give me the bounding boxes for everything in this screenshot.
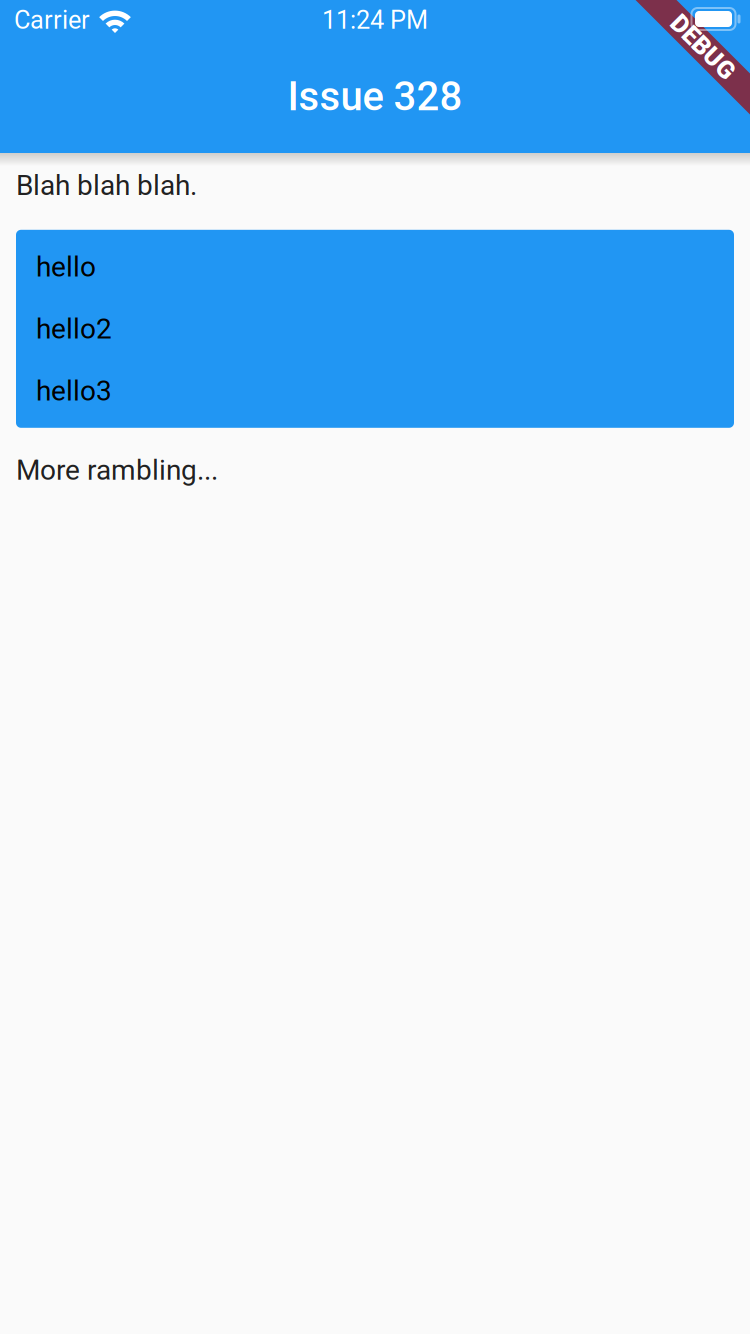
button[interactable]: hello [16, 236, 734, 298]
staticText: Issue 328 [287, 73, 462, 120]
button[interactable]: hello3 [16, 360, 734, 422]
staticText: hello2 [36, 312, 112, 345]
staticText: hello3 [36, 374, 112, 407]
staticText: Carrier [14, 5, 90, 35]
staticText: DEBUG [663, 32, 743, 62]
staticText: More rambling... [16, 454, 218, 487]
button[interactable]: hello2 [16, 298, 734, 360]
staticText: hello [36, 250, 96, 283]
staticText: Blah blah blah. [16, 169, 197, 202]
staticText: 11:24 PM [322, 5, 428, 35]
